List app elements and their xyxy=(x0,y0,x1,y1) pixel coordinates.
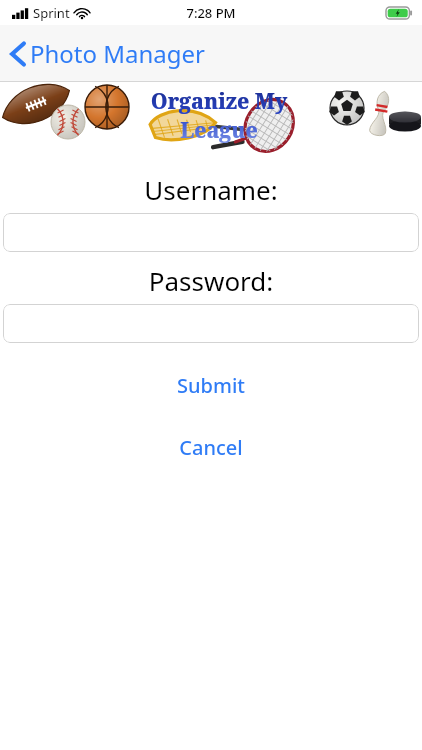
staticText: Cancel xyxy=(179,434,243,461)
staticText: Password: xyxy=(0,263,422,298)
button[interactable]: Back xyxy=(8,33,214,74)
button[interactable]: Cancel xyxy=(0,432,422,463)
button[interactable]: Submit xyxy=(0,370,422,401)
staticText: 7:28 PM xyxy=(186,4,236,22)
staticText: Sprint xyxy=(33,4,70,22)
staticText: Username: xyxy=(0,172,422,207)
staticText: Submit xyxy=(177,372,245,399)
button[interactable] xyxy=(3,213,419,252)
other: Back xyxy=(11,42,25,66)
button[interactable] xyxy=(3,304,419,343)
staticText: Organize My League xyxy=(124,87,314,145)
staticText: Photo Manager xyxy=(30,37,206,70)
